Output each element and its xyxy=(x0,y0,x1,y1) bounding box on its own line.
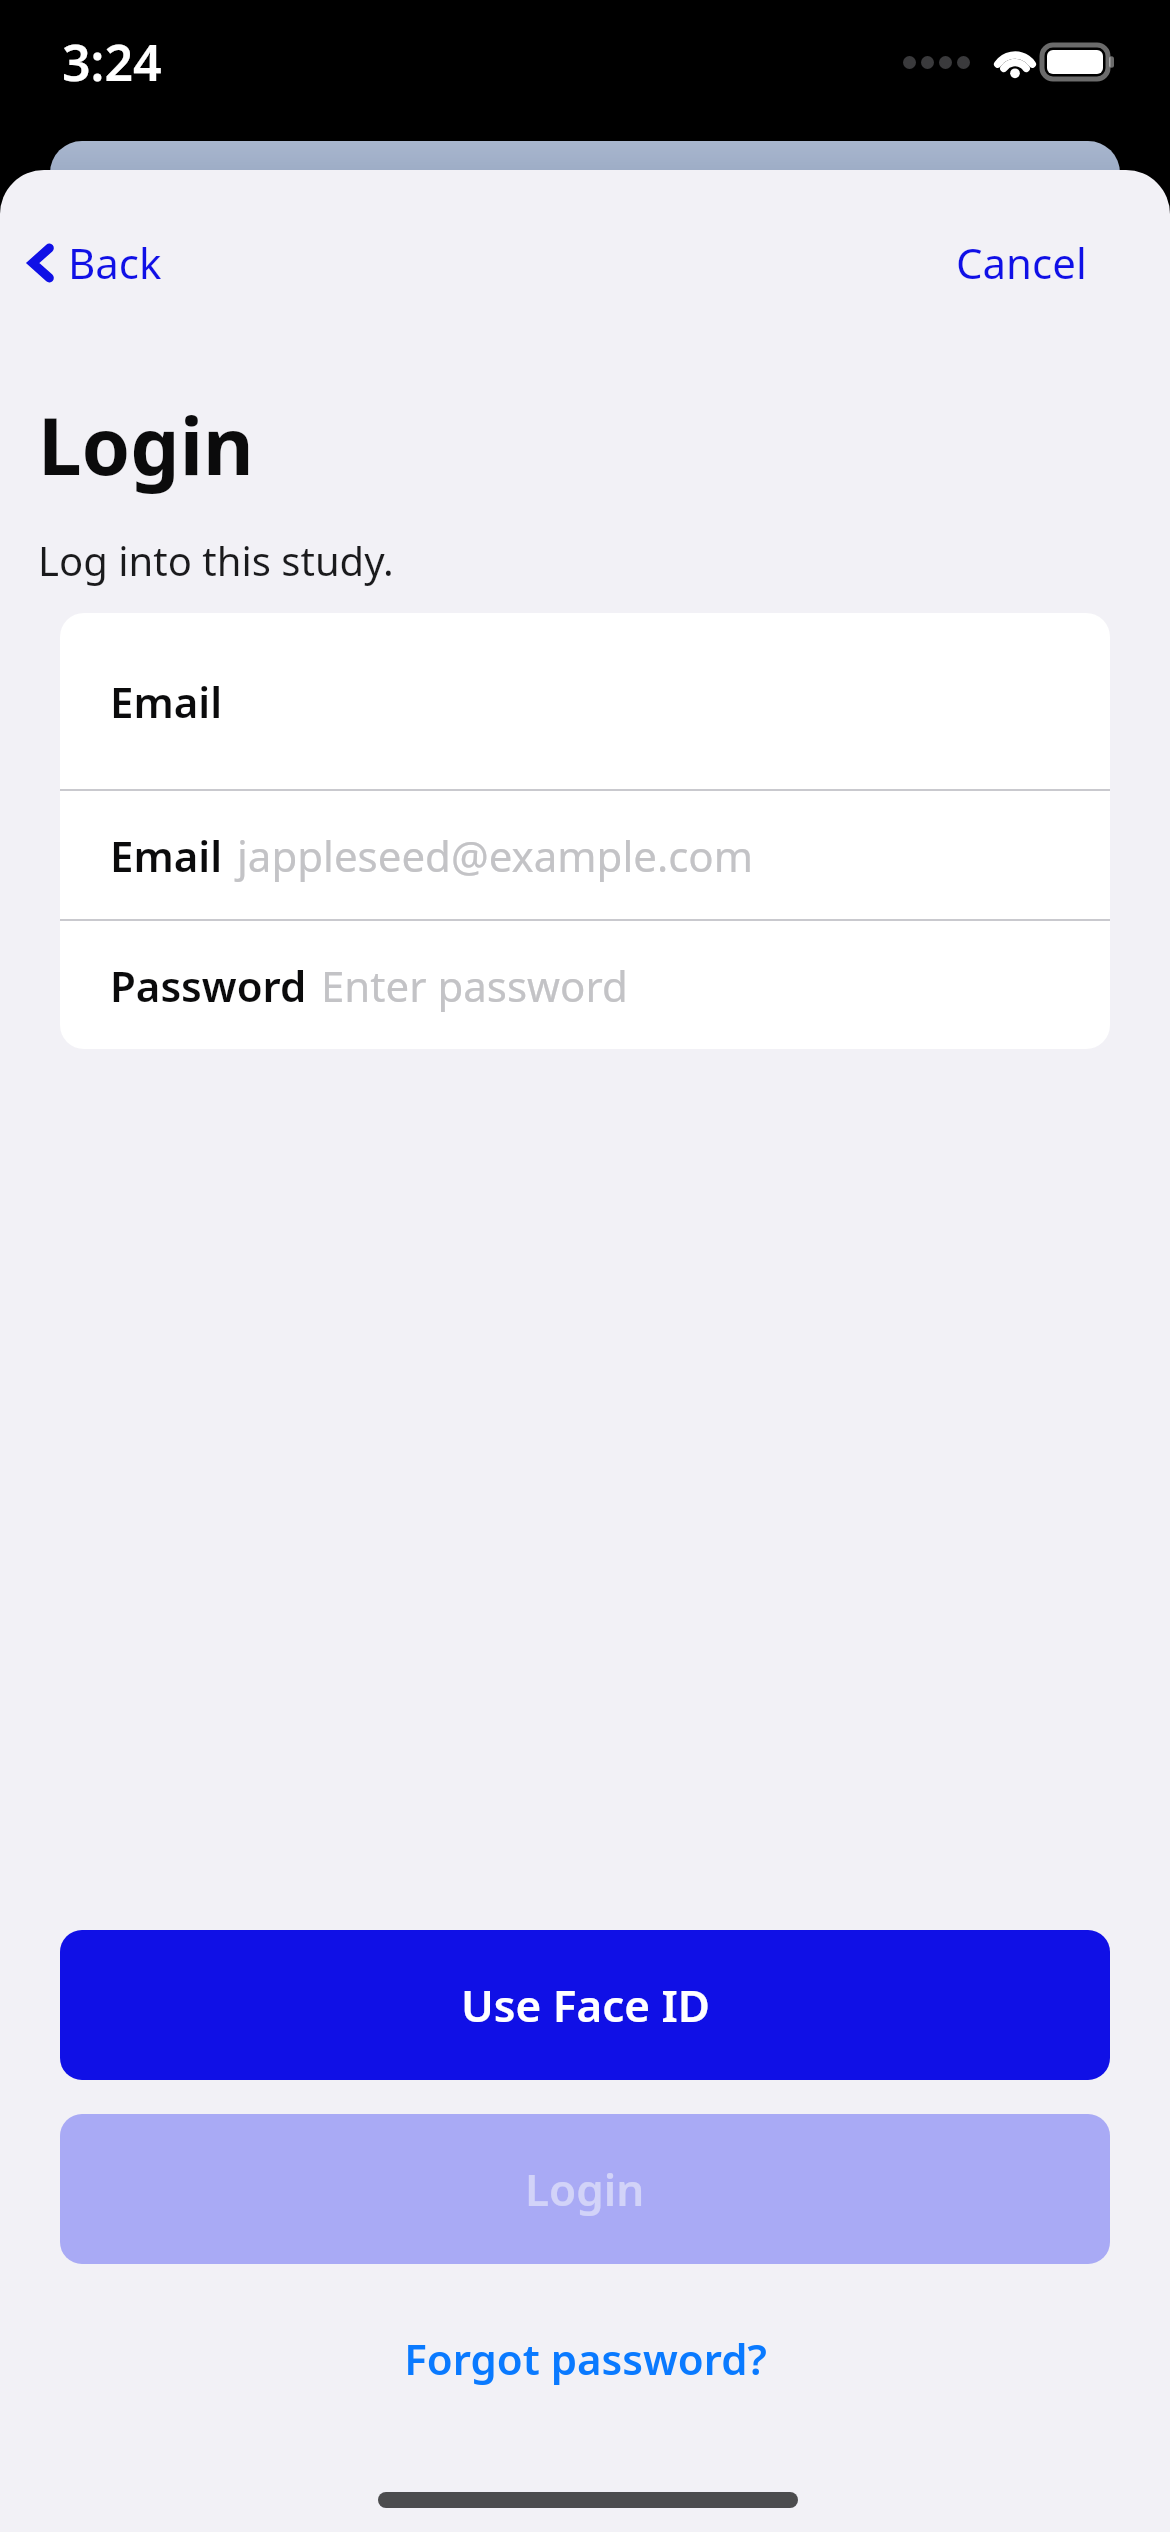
staticText: jappleseed@example.com xyxy=(237,827,754,884)
staticText: Email xyxy=(110,827,223,884)
staticText: Login xyxy=(38,392,254,498)
button[interactable]: Use Face ID xyxy=(60,1930,1110,2080)
staticText: Forgot password? xyxy=(404,2330,767,2387)
button[interactable]: Back xyxy=(20,228,170,297)
staticText: Email xyxy=(110,673,223,730)
staticText: Login xyxy=(525,2159,645,2219)
button[interactable]: Login xyxy=(60,2114,1110,2264)
staticText: Enter password xyxy=(321,957,628,1014)
staticText: Cancel xyxy=(956,234,1087,291)
button[interactable]: Forgot password? xyxy=(380,2320,791,2397)
button[interactable]: Cancel xyxy=(940,228,1103,297)
button[interactable]: Email xyxy=(60,791,1110,919)
staticText: Password xyxy=(110,957,307,1014)
staticText: 3:24 xyxy=(62,28,162,96)
staticText: Back xyxy=(68,234,162,291)
button[interactable]: Password xyxy=(60,921,1110,1049)
button[interactable]: Email xyxy=(60,613,1110,789)
staticText: Use Face ID xyxy=(461,1975,710,2035)
staticText: Log into this study. xyxy=(38,533,394,587)
